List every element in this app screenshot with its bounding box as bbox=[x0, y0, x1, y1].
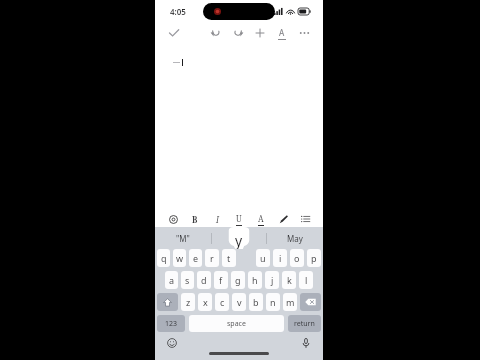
staticText: s bbox=[185, 274, 190, 286]
button[interactable]: Highlight bbox=[252, 211, 270, 227]
button[interactable]: Italic bbox=[208, 211, 226, 227]
button[interactable]: k bbox=[282, 271, 296, 289]
staticText: l bbox=[305, 274, 308, 286]
staticText: k bbox=[287, 274, 292, 286]
staticText: 123 bbox=[165, 319, 178, 329]
staticText: v bbox=[237, 296, 242, 308]
staticText: b bbox=[253, 296, 259, 308]
button[interactable]: Markup bbox=[274, 211, 292, 227]
staticText: m bbox=[286, 296, 295, 308]
button[interactable]: g bbox=[231, 271, 245, 289]
button[interactable]: c bbox=[215, 293, 229, 311]
button[interactable]: Add bbox=[249, 23, 271, 43]
button[interactable]: b bbox=[249, 293, 263, 311]
button[interactable]: o bbox=[290, 249, 304, 267]
staticText: A bbox=[279, 27, 285, 38]
button[interactable]: d bbox=[197, 271, 211, 289]
button[interactable]: Emoji bbox=[165, 336, 179, 350]
staticText: i bbox=[279, 252, 282, 264]
button[interactable]: p bbox=[307, 249, 321, 267]
button[interactable]: f bbox=[214, 271, 228, 289]
button[interactable]: "M" bbox=[155, 227, 211, 249]
button[interactable]: z bbox=[181, 293, 195, 311]
staticText: return bbox=[294, 319, 315, 329]
staticText: t bbox=[227, 252, 231, 264]
staticText: B bbox=[192, 214, 198, 225]
staticText: A bbox=[258, 213, 264, 224]
button[interactable]: Mention bbox=[164, 211, 182, 227]
staticText: r bbox=[210, 252, 214, 264]
button[interactable]: j bbox=[265, 271, 279, 289]
button[interactable]: 123 bbox=[157, 315, 185, 332]
button[interactable]: u bbox=[256, 249, 270, 267]
button[interactable]: h bbox=[248, 271, 262, 289]
button[interactable]: Underline bbox=[230, 211, 248, 227]
staticText: o bbox=[294, 252, 300, 264]
button[interactable]: x bbox=[198, 293, 212, 311]
button[interactable]: w bbox=[173, 249, 186, 267]
staticText: May bbox=[287, 233, 303, 244]
button[interactable]: space bbox=[189, 315, 284, 332]
staticText: U bbox=[236, 213, 242, 224]
staticText: c bbox=[220, 296, 225, 308]
staticText: 4:05 bbox=[170, 6, 186, 17]
button[interactable]: e bbox=[189, 249, 202, 267]
button[interactable]: t bbox=[222, 249, 236, 267]
staticText: g bbox=[235, 274, 241, 286]
button[interactable]: n bbox=[266, 293, 280, 311]
staticText: q bbox=[161, 252, 167, 264]
button[interactable]: i bbox=[273, 249, 287, 267]
staticText: p bbox=[311, 252, 317, 264]
staticText: j bbox=[271, 274, 274, 286]
button[interactable]: l bbox=[299, 271, 313, 289]
staticText: space bbox=[227, 319, 246, 329]
button[interactable]: q bbox=[157, 249, 170, 267]
button[interactable]: List bbox=[296, 211, 314, 227]
button[interactable]: s bbox=[181, 271, 194, 289]
button[interactable]: Dictation bbox=[299, 336, 313, 350]
staticText: z bbox=[186, 296, 191, 308]
button[interactable]: Bold bbox=[186, 211, 204, 227]
button[interactable]: a bbox=[165, 271, 178, 289]
staticText: y bbox=[235, 231, 243, 249]
staticText: e bbox=[193, 252, 199, 264]
staticText: f bbox=[219, 274, 223, 286]
button[interactable]: Done bbox=[165, 24, 183, 42]
staticText: x bbox=[203, 296, 208, 308]
button[interactable]: Backspace bbox=[300, 293, 321, 311]
button[interactable]: m bbox=[283, 293, 297, 311]
staticText: "M" bbox=[176, 233, 190, 244]
staticText: w bbox=[176, 252, 184, 264]
staticText: n bbox=[270, 296, 276, 308]
staticText: a bbox=[169, 274, 175, 286]
staticText: h bbox=[252, 274, 258, 286]
staticText: I bbox=[216, 214, 219, 225]
button[interactable]: v bbox=[232, 293, 246, 311]
button[interactable]: r bbox=[205, 249, 219, 267]
button[interactable]: May bbox=[267, 227, 323, 249]
button[interactable]: Undo bbox=[205, 23, 227, 43]
button[interactable]: More bbox=[293, 23, 315, 43]
button[interactable]: Redo bbox=[227, 23, 249, 43]
staticText: u bbox=[260, 252, 266, 264]
staticText: d bbox=[201, 274, 207, 286]
button[interactable]: Format bbox=[271, 23, 293, 43]
button[interactable]: return bbox=[288, 315, 321, 332]
button[interactable]: Shift bbox=[157, 293, 178, 311]
